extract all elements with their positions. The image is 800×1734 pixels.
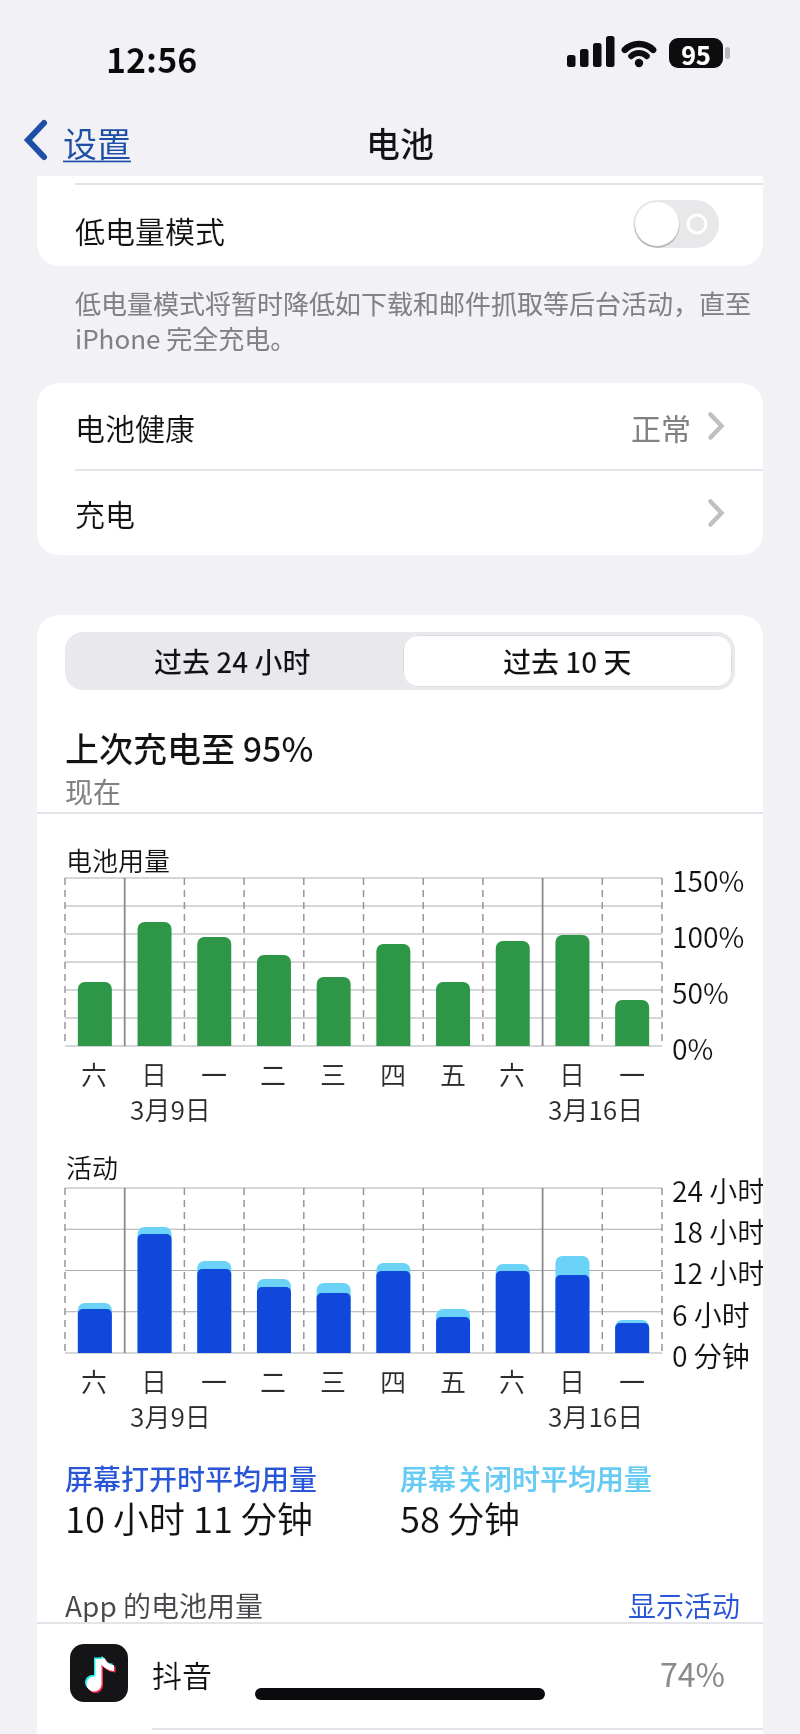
button[interactable]	[633, 200, 719, 248]
staticText: 3月16日	[548, 1397, 644, 1435]
staticText: 日	[134, 1055, 174, 1093]
button[interactable]: 电池健康	[37, 383, 763, 469]
staticText: 六	[74, 1362, 114, 1400]
staticText: 一	[612, 1055, 652, 1093]
staticText: 50%	[672, 972, 729, 1013]
button[interactable]: 抖音	[37, 1624, 763, 1722]
staticText: 电池健康	[75, 405, 195, 448]
staticText: 五	[433, 1362, 473, 1400]
staticText: 四	[373, 1055, 413, 1093]
staticText: 10 小时 11 分钟	[65, 1491, 314, 1543]
staticText: 抖音	[152, 1652, 212, 1695]
staticText: 低电量模式将暂时降低如下载和邮件抓取等后台活动，直至 iPhone 完全充电。	[75, 284, 752, 357]
staticText: 6 小时	[672, 1294, 750, 1335]
staticText: 24 小时	[672, 1170, 763, 1211]
staticText: 屏幕打开时平均用量	[65, 1458, 318, 1499]
button[interactable]: 充电	[37, 470, 763, 555]
staticText: 五	[433, 1055, 473, 1093]
staticText: 六	[74, 1055, 114, 1093]
staticText: 三	[313, 1362, 353, 1400]
staticText: 58 分钟	[400, 1491, 521, 1543]
staticText: 日	[134, 1362, 174, 1400]
button[interactable]: 设置	[63, 118, 131, 167]
staticText: 充电	[75, 491, 135, 534]
staticText: 三	[313, 1055, 353, 1093]
staticText: 低电量模式	[75, 208, 225, 251]
staticText: 0 分钟	[672, 1335, 750, 1376]
staticText: 12:56	[106, 34, 198, 83]
staticText: 四	[373, 1362, 413, 1400]
staticText: 一	[194, 1055, 234, 1093]
staticText: 0%	[672, 1028, 714, 1069]
staticText: 屏幕关闭时平均用量	[400, 1458, 653, 1499]
button[interactable]: 过去 24 小时	[65, 632, 400, 690]
staticText: 六	[492, 1055, 532, 1093]
staticText: 二	[253, 1055, 293, 1093]
staticText: App 的电池用量	[65, 1585, 264, 1626]
staticText: 设置	[63, 118, 131, 167]
staticText: 过去 24 小时	[154, 641, 311, 682]
staticText: 现在	[65, 771, 122, 812]
staticText: 二	[253, 1362, 293, 1400]
staticText: 一	[194, 1362, 234, 1400]
staticText: 电池	[0, 118, 800, 167]
staticText: 过去 10 天	[503, 641, 632, 682]
staticText: 日	[552, 1055, 592, 1093]
staticText: 活动	[66, 1148, 119, 1186]
staticText: 95	[669, 36, 723, 72]
staticText: 3月16日	[548, 1090, 644, 1128]
staticText: 12 小时	[672, 1252, 763, 1293]
button[interactable]: 显示活动	[440, 1585, 740, 1626]
button[interactable]: 过去 10 天	[400, 632, 735, 690]
staticText: 3月9日	[130, 1397, 211, 1435]
staticText: 六	[492, 1362, 532, 1400]
button[interactable]	[24, 121, 50, 159]
staticText: 日	[552, 1362, 592, 1400]
staticText: 电池用量	[66, 841, 171, 879]
staticText: 显示活动	[440, 1585, 740, 1626]
staticText: 74%	[660, 1650, 725, 1696]
staticText: 一	[612, 1362, 652, 1400]
staticText: 100%	[672, 916, 745, 957]
staticText: 3月9日	[130, 1090, 211, 1128]
staticText: 18 小时	[672, 1211, 763, 1252]
staticText: 上次充电至 95%	[65, 723, 314, 772]
staticText: 正常	[631, 405, 691, 448]
staticText: 150%	[672, 860, 745, 901]
button[interactable]: 低电量模式	[37, 176, 763, 266]
